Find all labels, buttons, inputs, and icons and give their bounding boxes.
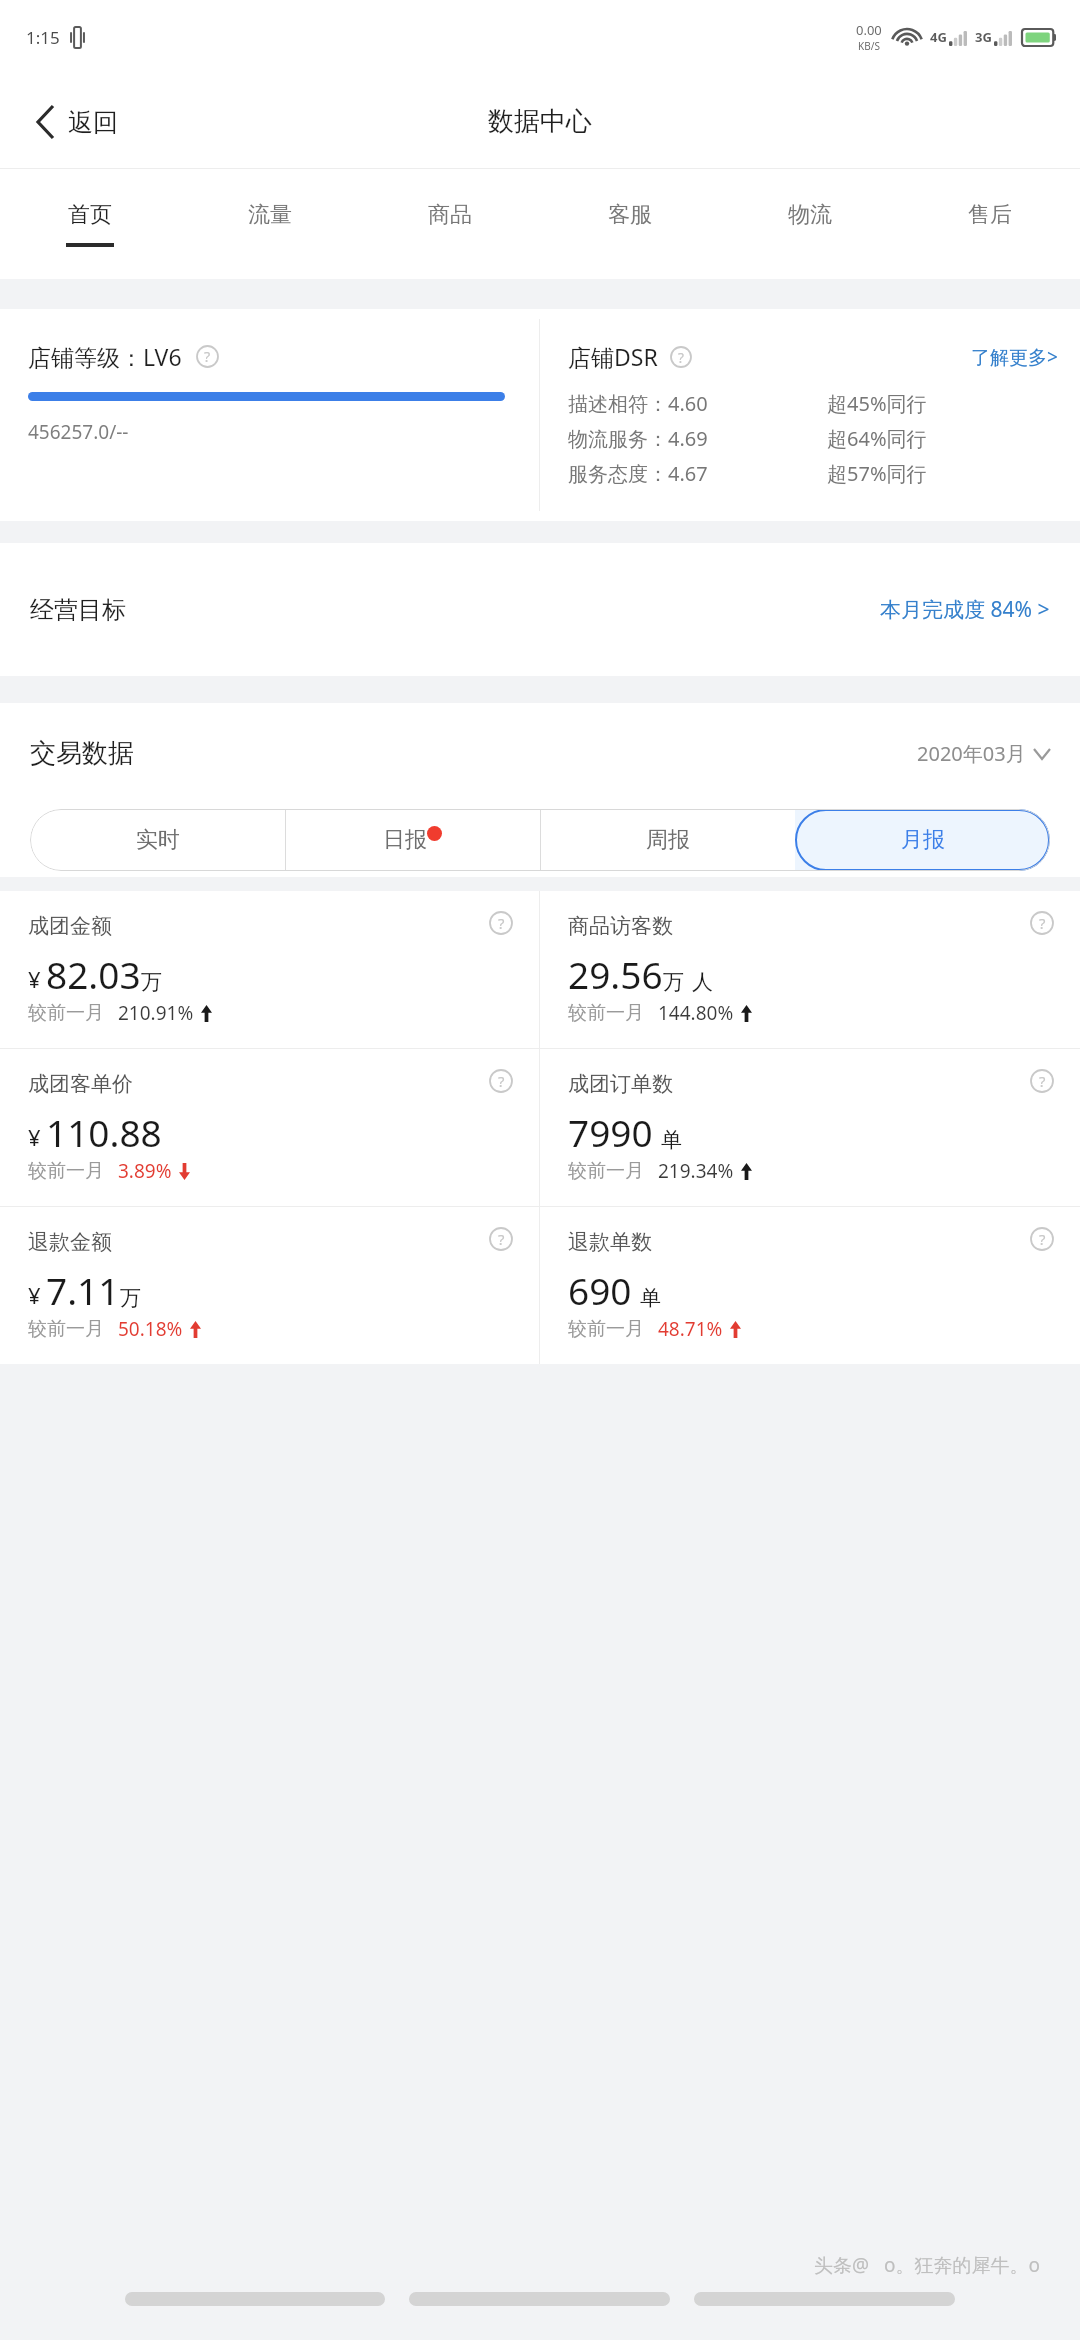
staticText: ? — [498, 913, 505, 933]
staticText: ¥ — [28, 1122, 41, 1152]
staticText: 50.18% — [118, 1316, 183, 1342]
button[interactable]: 月报 — [795, 809, 1050, 871]
staticText: 交易数据 — [30, 737, 134, 770]
staticText: 退款单数 — [568, 1229, 652, 1255]
staticText: 本月完成度 84% > — [880, 595, 1050, 624]
staticText: 超45%同行 — [827, 390, 1058, 417]
staticText: ? — [1039, 913, 1046, 933]
staticText: 头条@ o。狂奔的犀牛。o — [814, 2252, 1040, 2278]
staticText: 服务态度：4.67 — [568, 460, 827, 487]
button[interactable]: Help — [489, 911, 513, 935]
staticText: 退款金额 — [28, 1229, 112, 1255]
button[interactable]: 店铺DSR — [540, 309, 1080, 521]
staticText: 商品 — [428, 201, 472, 229]
staticText: 4G — [930, 28, 947, 46]
button[interactable]: 日报 — [285, 809, 540, 871]
staticText: 客服 — [608, 201, 652, 229]
staticText: 超57%同行 — [827, 460, 1058, 487]
button[interactable]: Help — [670, 346, 692, 368]
staticText: 物流 — [788, 201, 832, 229]
staticText: 首页 — [68, 201, 112, 229]
staticText: 0.00 — [856, 21, 882, 39]
staticText: 物流服务：4.69 — [568, 425, 827, 452]
button[interactable]: Help — [0, 891, 539, 1048]
staticText: 成团订单数 — [568, 1071, 673, 1097]
button[interactable]: 周报 — [540, 809, 795, 871]
staticText: 万 — [141, 969, 162, 995]
staticText: ? — [204, 347, 211, 366]
staticText: 周报 — [646, 826, 690, 854]
staticText: KB/S — [858, 39, 880, 53]
button[interactable]: 2020年03月 — [917, 740, 1050, 767]
staticText: 456257.0/-- — [28, 419, 129, 445]
staticText: 219.34% — [658, 1158, 734, 1184]
staticText: 描述相符：4.60 — [568, 390, 827, 417]
staticText: 144.80% — [658, 1000, 734, 1026]
staticText: 经营目标 — [30, 595, 126, 625]
staticText: 较前一月 — [568, 1317, 644, 1341]
staticText: 7.11 — [46, 1265, 120, 1315]
staticText: 成团金额 — [28, 913, 112, 939]
staticText: 较前一月 — [28, 1159, 104, 1183]
staticText: 成团客单价 — [28, 1071, 133, 1097]
button[interactable]: Help — [0, 1207, 539, 1364]
button[interactable]: 物流 — [720, 169, 900, 279]
staticText: 82.03 — [46, 949, 141, 999]
staticText: ¥ — [28, 964, 41, 994]
staticText: 3G — [975, 28, 992, 46]
staticText: 48.71% — [658, 1316, 723, 1342]
staticText: 单 — [640, 1285, 661, 1311]
staticText: 商品访客数 — [568, 913, 673, 939]
staticText: 7990 — [568, 1107, 653, 1157]
staticText: ¥ — [28, 1280, 41, 1310]
staticText: 流量 — [248, 201, 292, 229]
staticText: ? — [1039, 1071, 1046, 1091]
staticText: 3.89% — [118, 1158, 172, 1184]
button[interactable]: Help — [540, 1049, 1080, 1206]
staticText: 万 — [120, 1285, 141, 1311]
staticText: 2020年03月 — [917, 740, 1026, 767]
staticText: 日报 — [383, 826, 427, 854]
button[interactable]: 店铺等级：LV6 — [0, 309, 539, 521]
button[interactable]: Navigation — [125, 2292, 385, 2306]
button[interactable]: 经营目标 — [0, 543, 1080, 676]
button[interactable]: 售后 — [900, 169, 1080, 279]
button[interactable]: Help — [0, 1049, 539, 1206]
staticText: 返回 — [68, 107, 118, 138]
button[interactable]: Navigation — [694, 2292, 955, 2306]
button[interactable]: Help — [1030, 911, 1054, 935]
staticText: ? — [678, 348, 684, 367]
button[interactable]: Help — [196, 345, 219, 368]
staticText: 单 — [661, 1127, 682, 1153]
button[interactable]: Help — [540, 1207, 1080, 1364]
button[interactable]: 客服 — [540, 169, 720, 279]
staticText: 售后 — [968, 201, 1012, 229]
button[interactable]: Help — [489, 1069, 513, 1093]
button[interactable]: 了解更多> — [971, 344, 1058, 370]
staticText: ? — [498, 1071, 505, 1091]
button[interactable]: Help — [1030, 1227, 1054, 1251]
button[interactable]: 实时 — [30, 809, 285, 871]
button[interactable]: 返回 — [24, 98, 130, 146]
staticText: 较前一月 — [28, 1317, 104, 1341]
button[interactable]: Help — [540, 891, 1080, 1048]
staticText: 29.56 — [568, 949, 663, 999]
staticText: 690 — [568, 1265, 632, 1315]
button[interactable]: 商品 — [360, 169, 540, 279]
staticText: 实时 — [136, 826, 180, 854]
button[interactable]: Help — [489, 1227, 513, 1251]
staticText: 110.88 — [46, 1107, 162, 1157]
button[interactable]: Navigation — [409, 2292, 670, 2306]
staticText: 较前一月 — [28, 1001, 104, 1025]
staticText: 人 — [692, 969, 713, 995]
staticText: 1:15 — [26, 26, 60, 49]
staticText: 月报 — [901, 826, 945, 854]
button[interactable]: Help — [1030, 1069, 1054, 1093]
button[interactable]: 首页 — [0, 169, 180, 279]
staticText: 较前一月 — [568, 1001, 644, 1025]
staticText: ? — [498, 1229, 505, 1249]
button[interactable]: 流量 — [180, 169, 360, 279]
staticText: 较前一月 — [568, 1159, 644, 1183]
staticText: ? — [1039, 1229, 1046, 1249]
staticText: 数据中心 — [488, 105, 592, 138]
